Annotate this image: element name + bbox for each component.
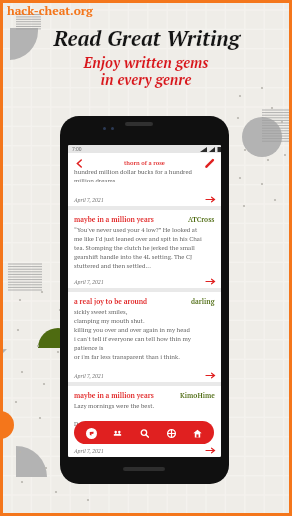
staticText: thorn of a rose (124, 159, 165, 167)
staticText: Lazy mornings were the best. Dwight usua… (74, 402, 198, 437)
staticText: KimoHime (180, 391, 215, 400)
staticText: 7:00 (72, 146, 82, 152)
staticText: April 7, 2021 (74, 372, 104, 379)
button[interactable]: Back (73, 157, 86, 170)
staticText: hundred million dollar bucks for a hundr… (74, 168, 193, 182)
staticText: April 7, 2021 (74, 447, 104, 454)
button[interactable]: Search (134, 423, 154, 443)
staticText: darling (191, 297, 215, 306)
staticText: April 7, 2021 (74, 278, 104, 285)
button[interactable]: Home (187, 423, 207, 443)
staticText: maybe in a million years (74, 391, 154, 400)
staticText: hack-cheat.org (7, 3, 93, 19)
staticText: maybe in a million years (74, 215, 154, 224)
button[interactable]: Edit (203, 157, 216, 170)
staticText: ATCross (188, 215, 215, 224)
button[interactable]: maybe in a million years (68, 210, 221, 288)
button[interactable]: Explore (81, 423, 101, 443)
button[interactable]: Groups (107, 423, 127, 443)
button[interactable]: maybe in a million years (68, 386, 221, 457)
button[interactable]: a real joy to be around (68, 292, 221, 382)
staticText: “You've never used your 4 low?” He looke… (74, 226, 202, 270)
staticText: sickly sweet smiles, clamping my mouth s… (74, 308, 191, 361)
button[interactable]: hundred million dollar bucks for a hundr… (68, 173, 221, 206)
button[interactable]: Profile (161, 423, 181, 443)
staticText: April 7, 2021 (74, 196, 104, 203)
staticText: Enjoy written gems in every genre (83, 53, 209, 89)
staticText: a real joy to be around (74, 297, 148, 306)
staticText: Read Great Writing (53, 24, 240, 52)
